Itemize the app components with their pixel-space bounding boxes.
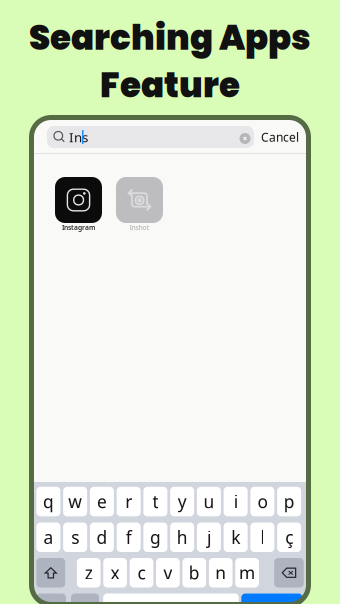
button[interactable]: e bbox=[90, 487, 114, 516]
staticText: n bbox=[215, 561, 226, 584]
button[interactable]: Instagram bbox=[55, 177, 102, 235]
staticText: ç bbox=[285, 526, 293, 549]
button[interactable]: s bbox=[63, 522, 87, 552]
button[interactable]: j bbox=[197, 522, 221, 552]
staticText: a bbox=[43, 526, 53, 549]
button[interactable]: w bbox=[63, 487, 87, 516]
button[interactable]: y bbox=[170, 487, 194, 516]
button[interactable]: Delete bbox=[274, 558, 304, 587]
button[interactable]: ç bbox=[277, 522, 301, 552]
staticText: t bbox=[152, 490, 158, 513]
staticText: j bbox=[207, 526, 211, 549]
button[interactable]: Emoji bbox=[71, 593, 99, 604]
staticText: Inshot bbox=[129, 223, 149, 232]
button[interactable]: d bbox=[90, 522, 114, 552]
staticText: Cancel bbox=[261, 129, 299, 145]
staticText: i bbox=[234, 490, 238, 513]
button[interactable]: i bbox=[224, 487, 248, 516]
staticText: e bbox=[97, 490, 107, 513]
staticText: l bbox=[260, 526, 264, 549]
staticText: o bbox=[257, 490, 267, 513]
button[interactable]: Numbers bbox=[36, 593, 66, 604]
staticText: Ins bbox=[69, 128, 88, 146]
button[interactable]: m bbox=[235, 558, 259, 587]
button[interactable]: f bbox=[117, 522, 141, 552]
button[interactable]: Cancel bbox=[261, 126, 311, 148]
staticText: c bbox=[137, 561, 145, 584]
button[interactable]: l bbox=[250, 522, 274, 552]
staticText: r bbox=[125, 490, 132, 513]
staticText: p bbox=[284, 490, 295, 513]
staticText: f bbox=[126, 526, 132, 549]
button[interactable]: h bbox=[170, 522, 194, 552]
button[interactable]: Clear text bbox=[237, 131, 252, 146]
staticText: Searching Apps bbox=[29, 14, 311, 62]
staticText: w bbox=[68, 490, 82, 513]
button[interactable]: v bbox=[156, 558, 180, 587]
button[interactable]: a bbox=[36, 522, 60, 552]
button[interactable]: r bbox=[117, 487, 141, 516]
button[interactable]: b bbox=[182, 558, 206, 587]
button[interactable]: Inshot bbox=[116, 177, 163, 235]
button[interactable]: Search bbox=[241, 593, 302, 604]
staticText: Feature bbox=[100, 62, 240, 109]
staticText: Instagram bbox=[62, 223, 95, 232]
staticText: d bbox=[96, 526, 107, 549]
button[interactable]: q bbox=[36, 487, 60, 516]
staticText: k bbox=[231, 526, 240, 549]
staticText: v bbox=[163, 561, 172, 584]
staticText: s bbox=[71, 526, 79, 549]
staticText: z bbox=[85, 561, 93, 584]
button[interactable]: n bbox=[209, 558, 232, 587]
staticText: m bbox=[239, 561, 255, 584]
button[interactable]: t bbox=[143, 487, 167, 516]
button[interactable]: u bbox=[197, 487, 221, 516]
button[interactable]: k bbox=[224, 522, 248, 552]
button[interactable]: Space bbox=[103, 593, 239, 604]
button[interactable]: p bbox=[277, 487, 301, 516]
staticText: x bbox=[111, 561, 120, 584]
button[interactable]: x bbox=[103, 558, 127, 587]
button[interactable]: o bbox=[250, 487, 274, 516]
staticText: q bbox=[43, 490, 54, 513]
button[interactable]: g bbox=[143, 522, 167, 552]
staticText: y bbox=[178, 490, 187, 513]
staticText: b bbox=[189, 561, 200, 584]
button[interactable]: z bbox=[77, 558, 100, 587]
staticText: g bbox=[150, 526, 161, 549]
staticText: u bbox=[203, 490, 214, 513]
button[interactable]: Shift bbox=[36, 558, 65, 587]
button[interactable]: c bbox=[130, 558, 153, 587]
button[interactable]: Ins bbox=[47, 126, 254, 148]
staticText: h bbox=[177, 526, 188, 549]
